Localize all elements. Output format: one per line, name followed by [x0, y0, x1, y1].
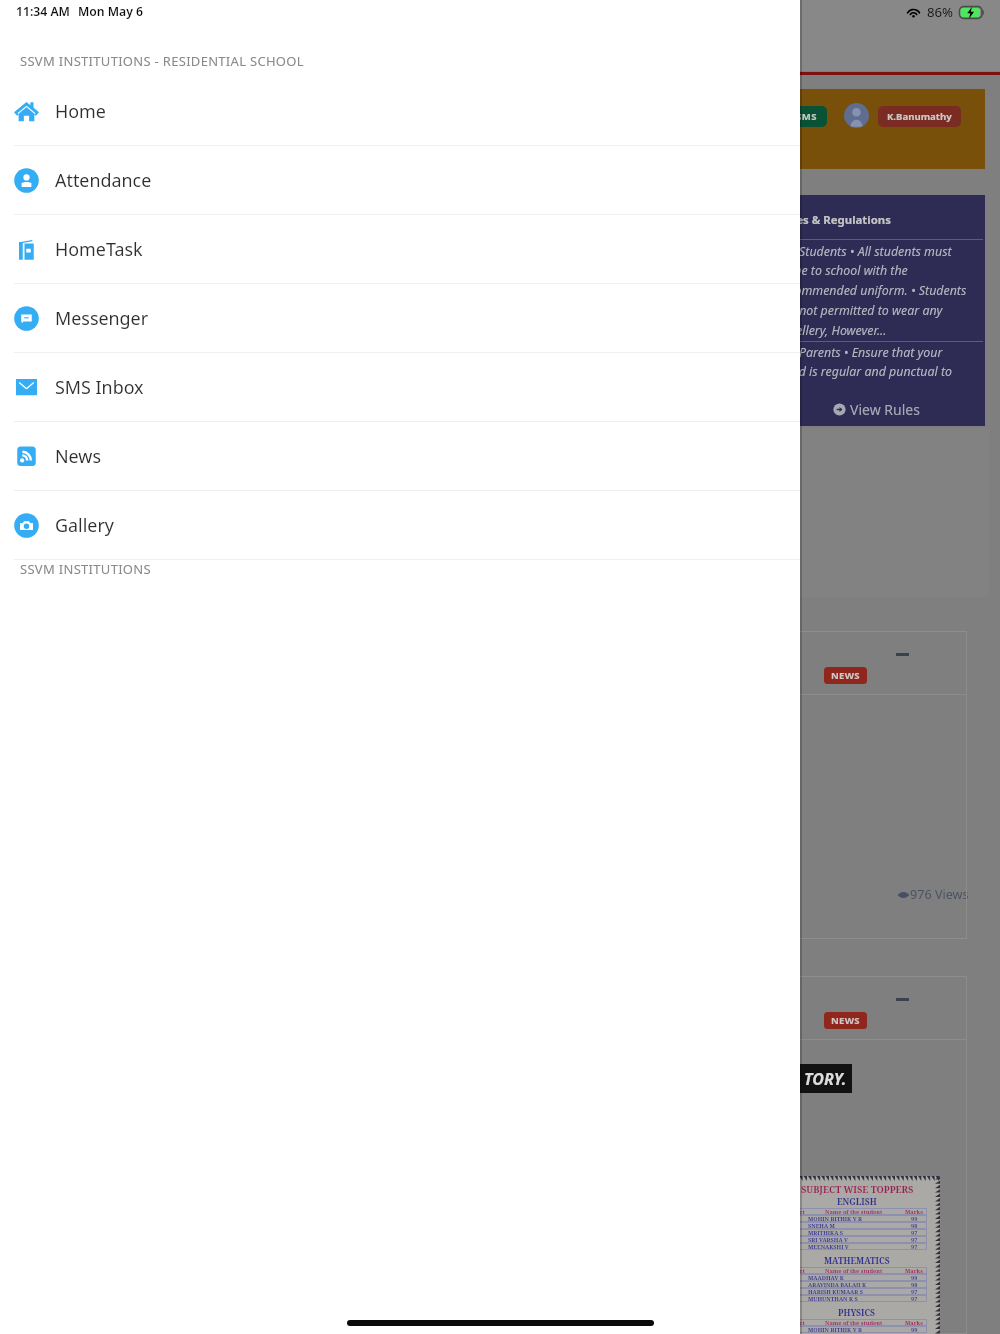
staticText: For Students • All students must come to…	[778, 243, 967, 339]
staticText: ubject	[787, 1319, 805, 1326]
staticText: ENGLISH	[837, 1196, 877, 1208]
staticText: PHYSICS	[838, 1307, 876, 1319]
staticText: Marks	[905, 1267, 923, 1274]
button[interactable]: Gallery	[0, 491, 800, 559]
staticText: MUHUNTHAN K S	[808, 1295, 858, 1302]
staticText: View Rules	[850, 400, 920, 419]
staticText: SSVM INSTITUTIONS - RESIDENTIAL SCHOOL	[20, 52, 304, 70]
staticText: Name of the student	[825, 1208, 883, 1215]
staticText: News	[55, 444, 101, 468]
staticText: SMS Inbox	[55, 375, 144, 399]
staticText: Rules & Regulations	[778, 212, 891, 228]
staticText: NEWS	[831, 669, 860, 682]
staticText: For Parents • Ensure that your ward is r…	[778, 344, 953, 380]
staticText: Messenger	[55, 306, 149, 330]
staticText: Gallery	[55, 513, 114, 537]
staticText: MOHIN RITHIK V R	[808, 1215, 863, 1222]
button[interactable]: Home	[0, 77, 800, 145]
staticText: SNEHA M	[808, 1222, 835, 1229]
staticText: 99	[911, 1215, 918, 1222]
staticText: 976 Views	[910, 886, 969, 903]
staticText: 98	[911, 1222, 918, 1229]
staticText: Mon May 6	[78, 3, 144, 20]
staticText: Home	[55, 99, 106, 123]
staticText: 11:34 AM	[16, 3, 70, 20]
staticText: HomeTask	[55, 237, 143, 261]
staticText: ubject	[787, 1267, 805, 1274]
staticText: 86%	[927, 3, 954, 21]
button[interactable]: NEWS	[600, 976, 967, 1334]
staticText: MATHEMATICS	[824, 1255, 890, 1267]
staticText: 99	[911, 1274, 918, 1281]
staticText: Name of the student	[825, 1319, 883, 1326]
staticText: MEENAKSHI V	[808, 1243, 849, 1250]
button[interactable]: K.Banumathy	[887, 110, 952, 123]
button[interactable]: News	[0, 422, 800, 490]
staticText: SRI VARSHA V	[808, 1236, 848, 1243]
staticText: K.Banumathy	[887, 110, 952, 123]
staticText: Marks	[905, 1208, 923, 1215]
staticText: Name of the student	[825, 1267, 883, 1274]
staticText: 97	[911, 1288, 918, 1295]
staticText: ubject	[787, 1208, 805, 1215]
staticText: SUBJECT WISE TOPPERS	[801, 1183, 914, 1196]
staticText: 99	[911, 1326, 918, 1333]
staticText: MAADHAV K	[808, 1274, 844, 1281]
staticText: NEWS	[831, 1014, 860, 1027]
staticText: SSVM INSTITUTIONS	[20, 560, 151, 578]
button[interactable]: Messenger	[0, 284, 800, 352]
button[interactable]: NEWS	[600, 631, 967, 939]
staticText: ARAVINDA BALAJI K	[808, 1281, 867, 1288]
staticText: HARISH KUMAAR S	[808, 1288, 864, 1295]
button[interactable]: HomeTask	[0, 215, 800, 283]
button[interactable]: Attendance	[0, 146, 800, 214]
staticText: 97	[911, 1236, 918, 1243]
button[interactable]: View Rules	[833, 400, 920, 419]
button[interactable]: Profile	[844, 103, 869, 128]
staticText: Marks	[905, 1319, 923, 1326]
staticText: 97	[911, 1295, 918, 1302]
staticText: MRITHIKA S	[808, 1229, 844, 1236]
staticText: 97	[911, 1243, 918, 1250]
staticText: TORY.	[804, 1068, 847, 1090]
staticText: Attendance	[55, 168, 152, 192]
button[interactable]: SMS Inbox	[0, 353, 800, 421]
staticText: MOHIN RITHIK V R	[808, 1326, 863, 1333]
staticText: 98	[911, 1281, 918, 1288]
staticText: SMS	[796, 110, 817, 123]
button[interactable]: SMS	[796, 110, 817, 123]
staticText: 97	[911, 1229, 918, 1236]
